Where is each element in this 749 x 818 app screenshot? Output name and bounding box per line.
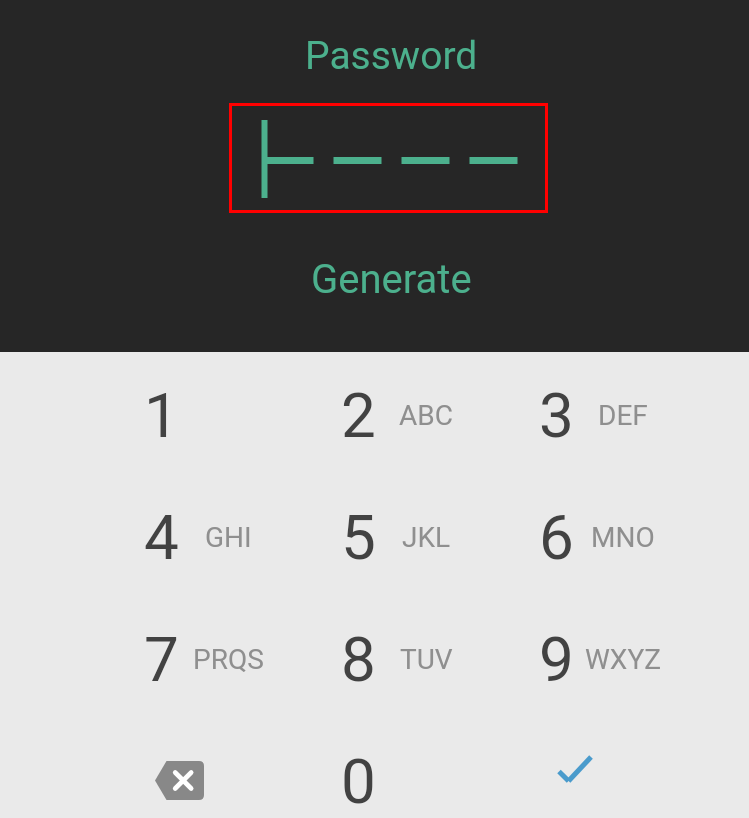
button[interactable]: 5 (250, 476, 500, 598)
staticText: 7 (144, 623, 179, 696)
staticText: TUV (400, 643, 453, 676)
button[interactable]: 2 (250, 354, 500, 476)
button[interactable]: 9 (500, 598, 749, 720)
button[interactable]: 4 (0, 476, 250, 598)
staticText: GHI (205, 521, 252, 554)
button[interactable]: Password (245, 26, 538, 86)
button[interactable]: Delete (0, 720, 250, 818)
button[interactable]: 8 (250, 598, 500, 720)
staticText: MNO (591, 521, 655, 554)
button[interactable]: 3 (500, 354, 749, 476)
button[interactable]: Confirm (500, 720, 749, 818)
staticText: PRQS (193, 643, 264, 676)
staticText: JKL (402, 521, 451, 554)
button[interactable]: Generate (245, 249, 538, 309)
staticText: 4 (144, 501, 179, 574)
staticText: Password (305, 33, 478, 79)
button[interactable]: 6 (500, 476, 749, 598)
staticText: 0 (341, 745, 376, 818)
staticText: ABC (399, 399, 453, 432)
staticText: 6 (539, 501, 574, 574)
staticText: DEF (598, 399, 648, 432)
button[interactable]: 0 (250, 720, 500, 818)
staticText: 1 (144, 379, 179, 452)
staticText: WXYZ (585, 643, 661, 676)
staticText: 3 (539, 379, 574, 452)
staticText: Generate (311, 256, 472, 303)
staticText: 2 (341, 379, 376, 452)
staticText: 9 (539, 623, 574, 696)
button[interactable]: 1 (0, 354, 250, 476)
staticText: 8 (341, 623, 376, 696)
button[interactable] (229, 103, 548, 213)
button[interactable]: 7 (0, 598, 250, 720)
staticText: 5 (341, 501, 376, 574)
